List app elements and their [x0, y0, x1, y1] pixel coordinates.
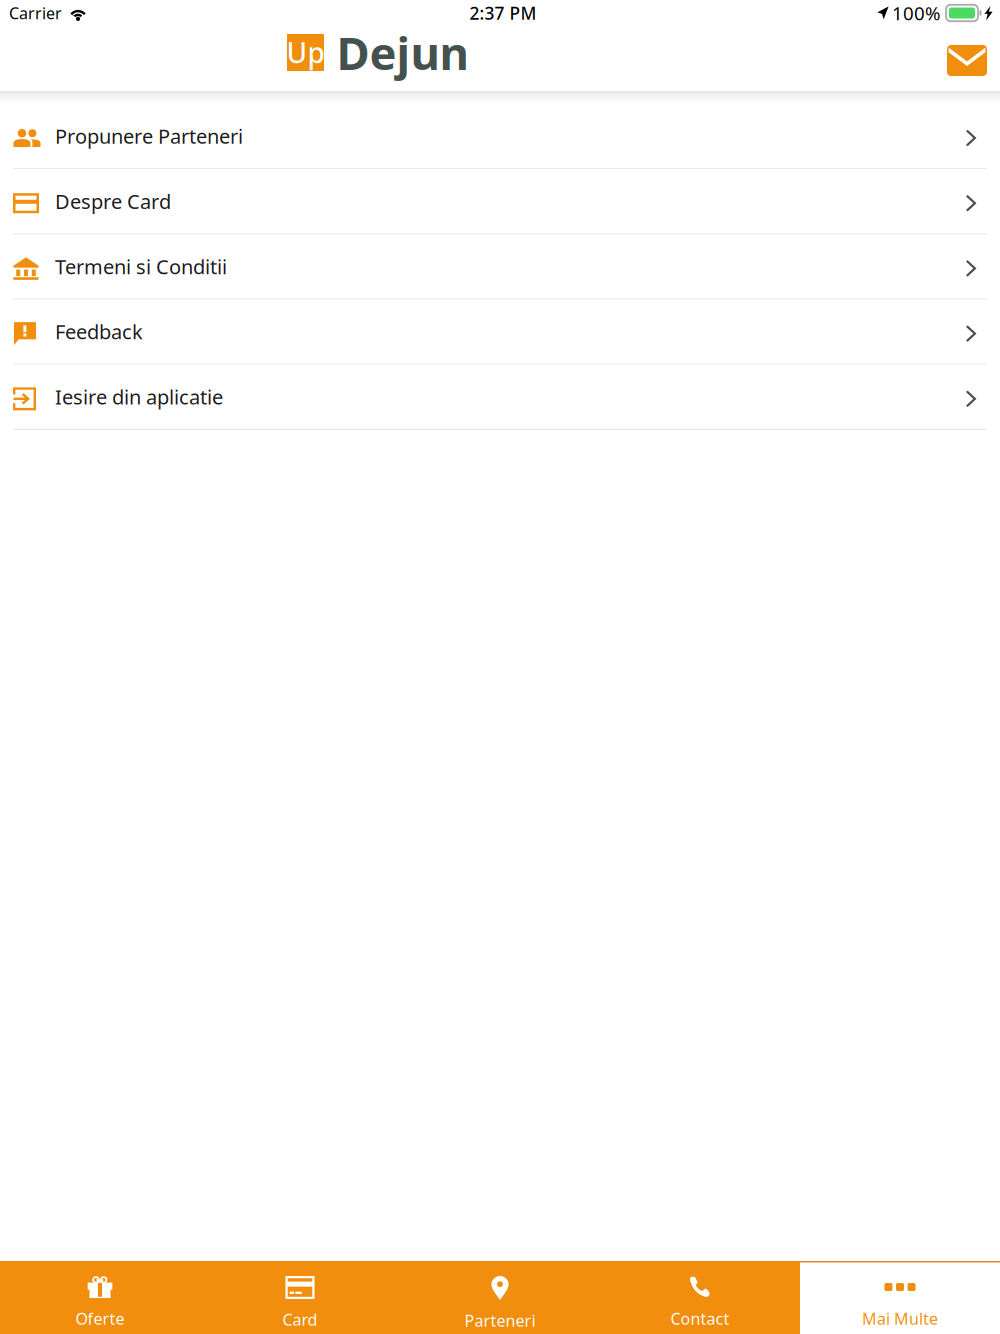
staticText: Termeni si Conditii	[55, 253, 227, 280]
button[interactable]: Propunere Parteneri	[0, 104, 1000, 169]
staticText: Feedback	[55, 318, 143, 345]
button[interactable]: Feedback	[0, 300, 1000, 365]
button[interactable]: Iesire din aplicatie	[0, 365, 1000, 430]
staticText: Contact	[670, 1308, 729, 1329]
button[interactable]: Parteneri	[400, 1261, 600, 1334]
staticText: Iesire din aplicatie	[55, 383, 223, 410]
staticText: Propunere Parteneri	[55, 123, 243, 149]
staticText: Despre Card	[55, 188, 171, 214]
button[interactable]: Termeni si Conditii	[0, 234, 1000, 300]
button[interactable]: Mai Multe	[800, 1261, 1000, 1334]
staticText: Card	[282, 1309, 317, 1330]
button[interactable]: Contact	[600, 1261, 800, 1334]
staticText: Oferte	[75, 1308, 124, 1329]
staticText: 100%	[892, 1, 941, 25]
staticText: Mai Multe	[862, 1308, 938, 1329]
staticText: Parteneri	[464, 1310, 535, 1331]
button[interactable]: Mesaje	[933, 35, 1000, 86]
button[interactable]: Card	[200, 1261, 400, 1334]
staticText: 2:37 PM	[469, 1, 536, 24]
staticText: Up	[286, 34, 324, 71]
staticText: Carrier	[9, 2, 62, 24]
button[interactable]: Oferte	[0, 1261, 200, 1334]
button[interactable]: Despre Card	[0, 169, 1000, 234]
staticText: Dejun	[336, 22, 468, 83]
